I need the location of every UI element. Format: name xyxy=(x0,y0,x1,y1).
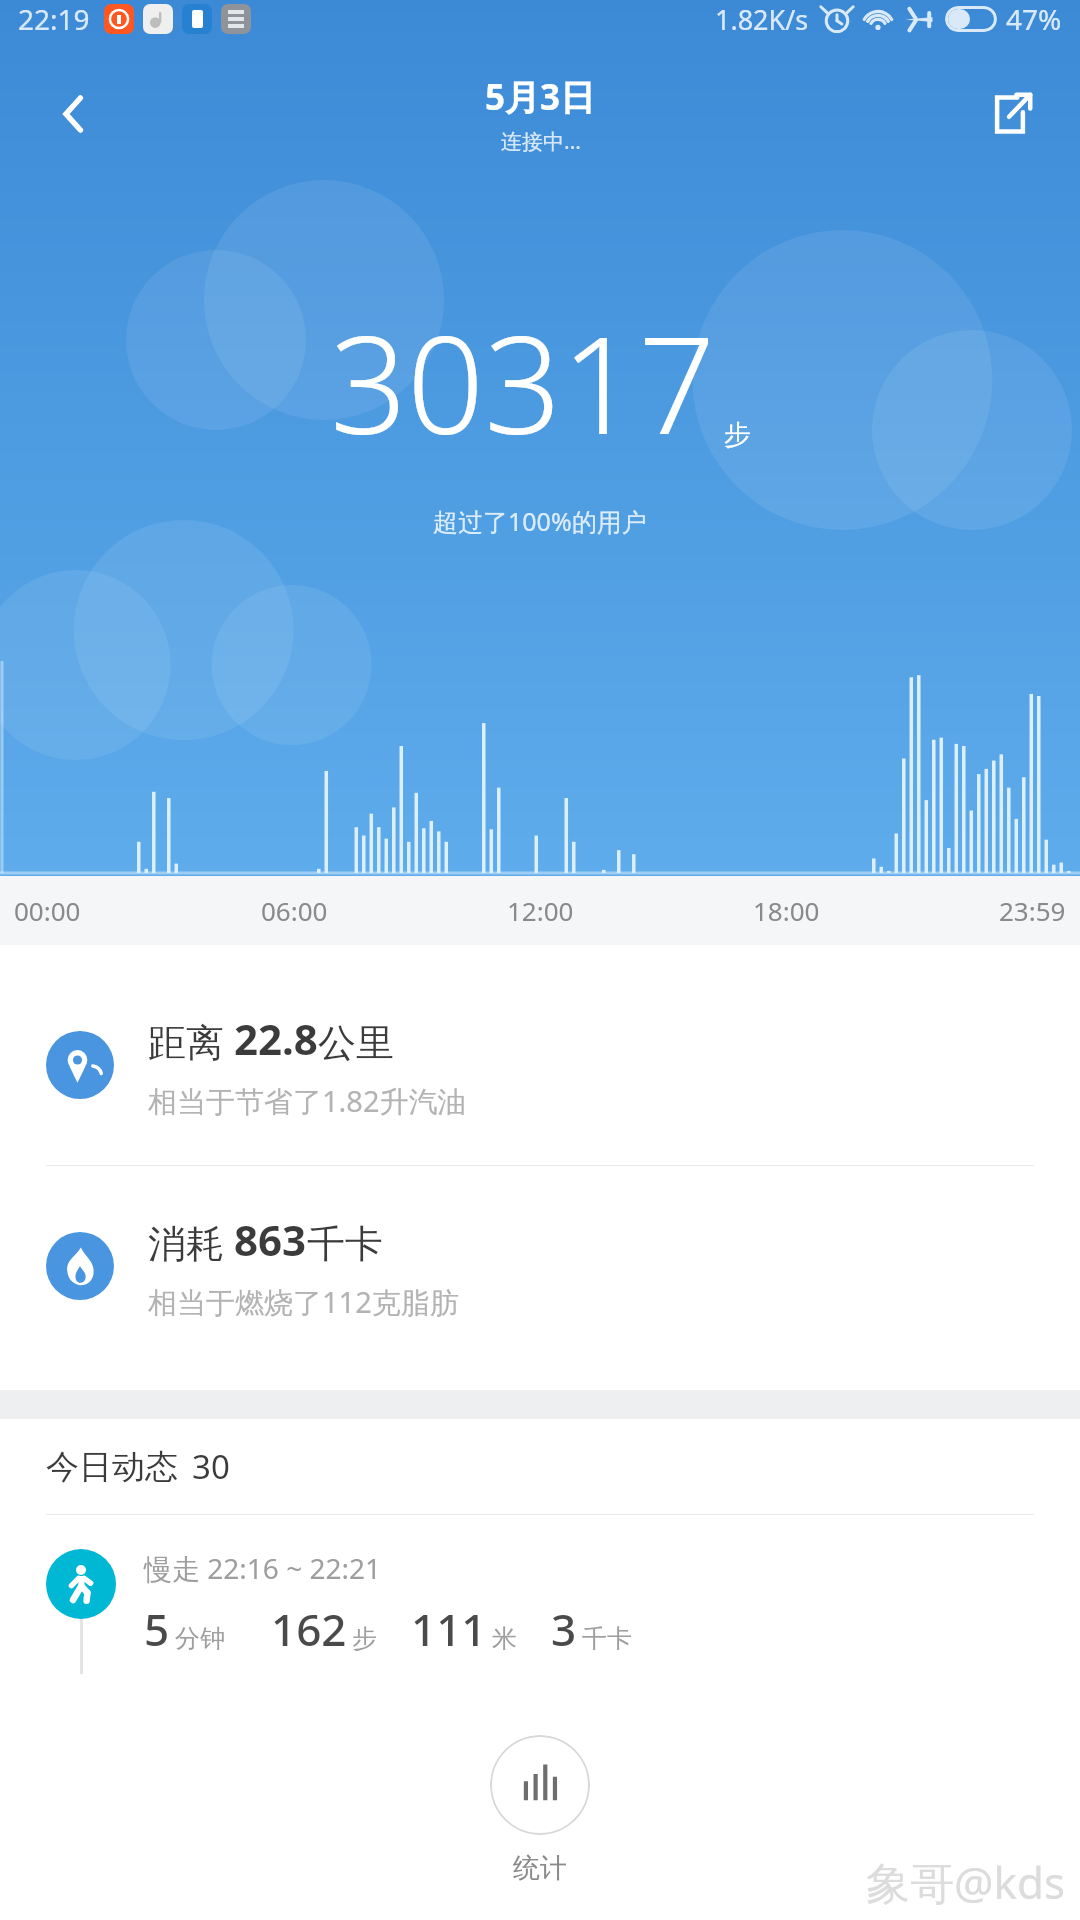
staticText: 3 xyxy=(551,1599,577,1659)
staticText: 超过了100%的用户 xyxy=(433,504,647,538)
staticText: 千卡 xyxy=(582,1623,632,1654)
button[interactable]: 消耗 xyxy=(0,1166,1080,1366)
staticText: 分钟 xyxy=(175,1623,225,1654)
staticText: 30317 xyxy=(330,290,716,474)
button[interactable]: Back xyxy=(38,78,110,150)
staticText: 23:59 xyxy=(999,893,1066,928)
staticText: 米 xyxy=(492,1623,517,1654)
staticText: 步 xyxy=(352,1623,377,1654)
staticText: 06:00 xyxy=(261,893,328,928)
staticText: 18:00 xyxy=(753,893,820,928)
staticText: 1.82K/s xyxy=(715,1,809,38)
staticText: 步 xyxy=(724,418,751,452)
staticText: 162 xyxy=(271,1599,347,1659)
button[interactable]: 统计 xyxy=(490,1735,590,1885)
staticText: 5 xyxy=(144,1599,170,1659)
staticText: 47% xyxy=(1006,0,1062,38)
staticText: 22.8 xyxy=(234,1010,318,1067)
staticText: 距离 xyxy=(148,1015,234,1067)
staticText: 千卡 xyxy=(307,1220,383,1268)
staticText: 今日动态 xyxy=(46,1446,178,1488)
staticText: 00:00 xyxy=(14,893,81,928)
staticText: 相当于燃烧了112克脂肪 xyxy=(148,1282,459,1322)
button[interactable]: Share xyxy=(974,78,1046,150)
staticText: 111 xyxy=(411,1599,487,1659)
staticText: 消耗 xyxy=(148,1216,234,1268)
staticText: 30 xyxy=(192,1444,230,1489)
staticText: 5月3日 xyxy=(485,73,596,121)
staticText: 22:19 xyxy=(18,0,90,38)
staticText: 12:00 xyxy=(507,893,574,928)
button[interactable]: 慢走 22:16 ~ 22:21 xyxy=(0,1549,1080,1674)
staticText: 相当于节省了1.82升汽油 xyxy=(148,1081,467,1121)
staticText: 统计 xyxy=(513,1851,567,1885)
staticText: 象哥@kds xyxy=(866,1852,1066,1912)
staticText: 公里 xyxy=(318,1019,394,1067)
staticText: 慢走 22:16 ~ 22:21 xyxy=(144,1549,381,1587)
staticText: 863 xyxy=(234,1211,307,1268)
staticText: 连接中... xyxy=(501,127,581,156)
button[interactable]: 距离 xyxy=(0,965,1080,1165)
